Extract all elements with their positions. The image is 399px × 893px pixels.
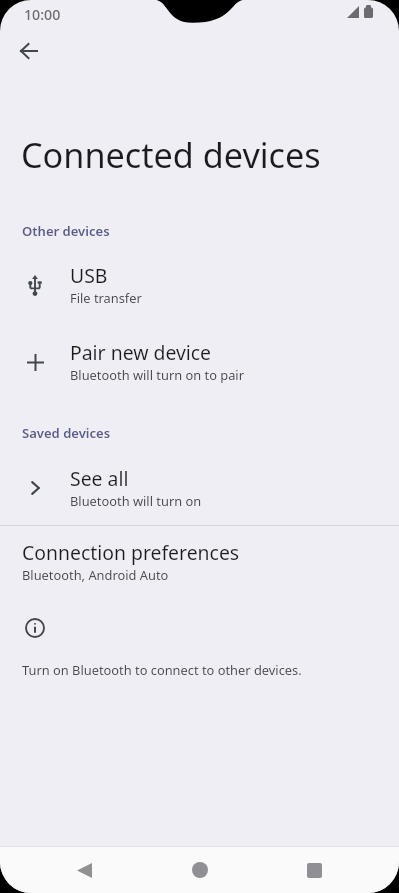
staticText: Bluetooth, Android Auto xyxy=(22,566,169,584)
button[interactable]: USB xyxy=(0,257,399,312)
button[interactable]: Pair new device xyxy=(0,334,399,389)
button[interactable]: Recent apps xyxy=(257,847,372,893)
button[interactable]: Home xyxy=(142,847,257,893)
button[interactable]: Connection preferences xyxy=(0,537,399,590)
staticText: Connected devices xyxy=(21,131,321,178)
button[interactable]: See all xyxy=(0,460,399,515)
button[interactable]: Back xyxy=(27,847,142,893)
button[interactable]: Back xyxy=(4,27,52,75)
staticText: Pair new device xyxy=(70,339,212,365)
staticText: See all xyxy=(70,465,129,491)
staticText: File transfer xyxy=(70,289,142,307)
staticText: Turn on Bluetooth to connect to other de… xyxy=(22,661,302,679)
staticText: Bluetooth will turn on to pair xyxy=(70,366,244,384)
staticText: USB xyxy=(70,262,108,288)
staticText: Bluetooth will turn on xyxy=(70,492,202,510)
staticText: Other devices xyxy=(22,222,110,240)
staticText: Saved devices xyxy=(22,424,111,442)
staticText: Connection preferences xyxy=(22,539,240,565)
staticText: 10:00 xyxy=(24,5,61,24)
